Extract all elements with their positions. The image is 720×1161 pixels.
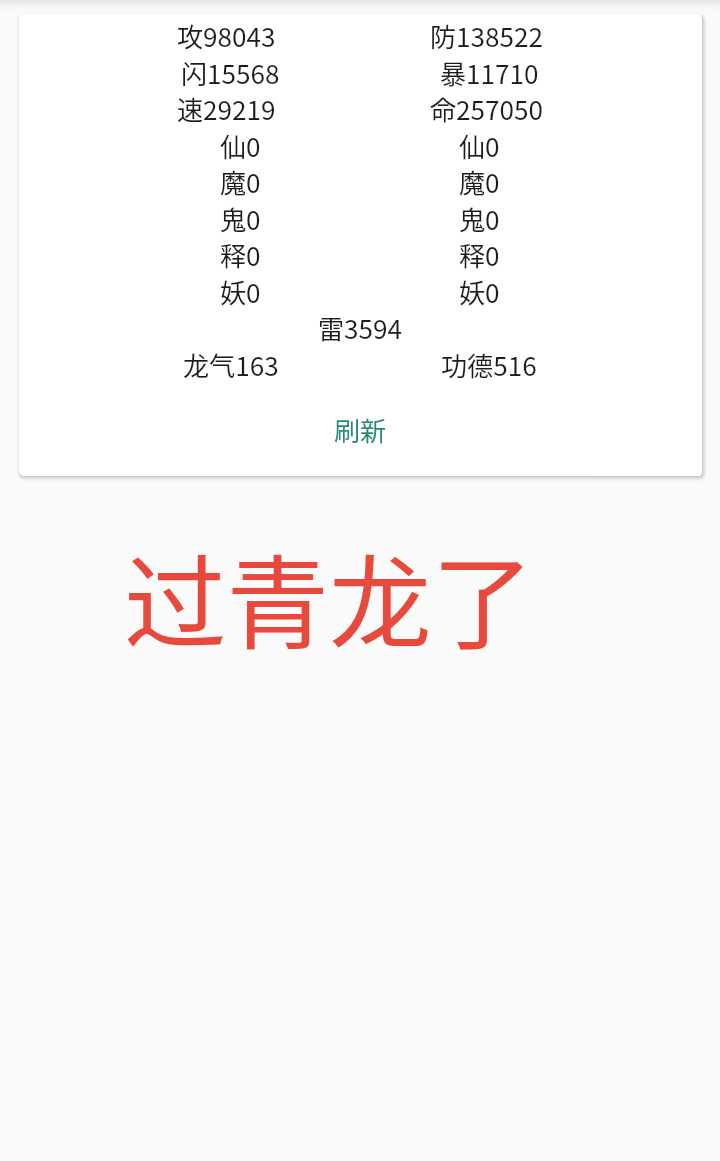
staticText: 命257050	[430, 90, 543, 124]
staticText: 闪15568	[181, 54, 280, 88]
button[interactable]: 刷新	[22, 406, 698, 454]
staticText: 速29219	[177, 90, 276, 124]
staticText: 功德516	[441, 346, 537, 380]
staticText: 雷3594	[318, 309, 403, 343]
staticText: 妖0	[459, 273, 500, 307]
staticText: 攻98043	[177, 17, 276, 51]
staticText: 释0	[220, 236, 261, 270]
staticText: 释0	[459, 236, 500, 270]
staticText: 暴11710	[440, 54, 539, 88]
staticText: 仙0	[459, 127, 500, 161]
staticText: 仙0	[220, 127, 261, 161]
staticText: 鬼0	[459, 200, 500, 234]
staticText: 鬼0	[220, 200, 261, 234]
staticText: 防138522	[430, 17, 543, 51]
staticText: 妖0	[220, 273, 261, 307]
staticText: 龙气163	[183, 346, 279, 380]
staticText: 魔0	[459, 163, 500, 197]
staticText: 过青龙了	[124, 522, 534, 670]
staticText: 刷新	[334, 411, 387, 449]
staticText: 魔0	[220, 163, 261, 197]
